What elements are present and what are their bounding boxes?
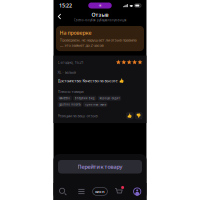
button[interactable]: Поиск: [53, 183, 72, 200]
staticText: XL · Белый: [57, 69, 75, 75]
staticText: Реакции на ваш отзыв: [57, 113, 97, 118]
button[interactable]: Нравится: [126, 112, 134, 119]
staticText: На проверке: [59, 29, 91, 36]
button[interactable]: Корзина: [109, 183, 128, 200]
button[interactable]: Назад: [54, 11, 64, 21]
button[interactable]: Каталог: [72, 183, 91, 200]
staticText: Отзыв: [91, 11, 108, 18]
staticText: 👎: [136, 113, 141, 118]
button[interactable]: Профиль: [128, 183, 146, 200]
staticText: хорошо сидит: [99, 96, 119, 100]
staticText: Сегодня, 15:21: [57, 60, 83, 65]
staticText: Плюсы товара: [57, 89, 83, 94]
staticText: Светло-голубая рубашка на пуговицах: [74, 18, 126, 22]
staticText: Достоинства: Качество на высоте 👍: [57, 78, 123, 83]
staticText: приятная ткань: [85, 103, 106, 106]
staticText: качество: [59, 96, 70, 100]
staticText: внешний вид: [75, 96, 95, 100]
staticText: 👍: [127, 113, 132, 118]
button[interactable]: Не нравится: [135, 112, 142, 119]
staticText: удобно носить: [59, 103, 80, 106]
staticText: ozon: [95, 189, 105, 194]
staticText: Проверяем, не нарушает ли отзыв правила …: [59, 37, 136, 48]
staticText: Перейти к товару: [77, 163, 122, 170]
staticText: 15:22: [59, 2, 72, 9]
staticText: ✳: [98, 3, 101, 8]
button[interactable]: Главная: [91, 183, 109, 200]
button[interactable]: Перейти к товару: [58, 160, 142, 173]
